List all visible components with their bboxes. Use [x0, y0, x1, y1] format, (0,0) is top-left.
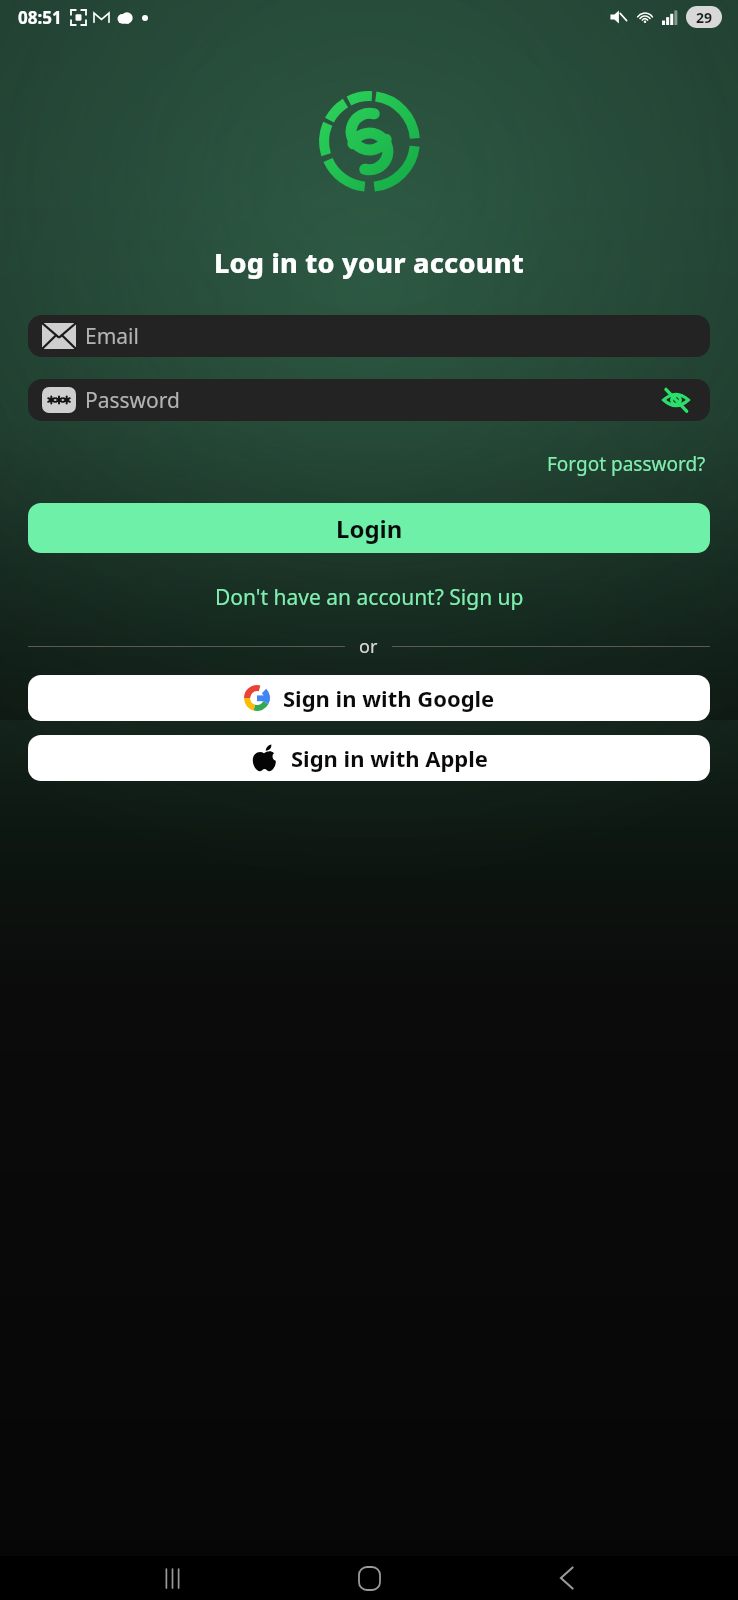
- button[interactable]: Home: [343, 1556, 395, 1600]
- button[interactable]: Recent apps: [146, 1556, 198, 1600]
- staticText: Password: [85, 386, 180, 415]
- button[interactable]: Password: [28, 379, 710, 421]
- button[interactable]: Email: [28, 315, 710, 357]
- button[interactable]: Forgot password?: [543, 447, 710, 481]
- button[interactable]: Back: [541, 1556, 593, 1600]
- button[interactable]: Don't have an account? Sign up: [209, 579, 530, 616]
- staticText: 29: [696, 8, 713, 27]
- button[interactable]: Sign in with Google: [28, 675, 710, 721]
- button[interactable]: Login: [28, 503, 710, 553]
- staticText: Forgot password?: [547, 451, 706, 477]
- button[interactable]: Show password: [656, 380, 696, 420]
- staticText: Sign in with Apple: [291, 743, 488, 773]
- staticText: Don't have an account? Sign up: [215, 583, 524, 612]
- staticText: Sign in with Google: [283, 683, 495, 713]
- staticText: Log in to your account: [0, 244, 738, 281]
- button[interactable]: Sign in with Apple: [28, 735, 710, 781]
- staticText: Email: [85, 322, 139, 351]
- staticText: 08:51: [18, 6, 62, 29]
- staticText: or: [359, 634, 378, 659]
- staticText: Login: [336, 512, 403, 545]
